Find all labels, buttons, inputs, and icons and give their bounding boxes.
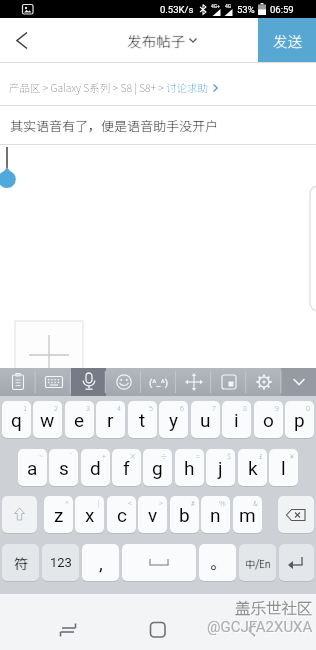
staticText: @GCJFA2XUXA: [207, 618, 313, 636]
staticText: $: [227, 450, 231, 461]
staticText: v: [148, 504, 158, 526]
button[interactable]: [71, 368, 106, 396]
staticText: 产品区 > Galaxy S系列 > S8 | S8+ > 讨论求助: [9, 80, 209, 95]
staticText: %: [219, 497, 226, 508]
button[interactable]: 发布帖子: [127, 30, 197, 51]
staticText: l: [281, 457, 286, 479]
staticText: <: [128, 497, 132, 508]
button[interactable]: (^_^): [141, 368, 176, 396]
button[interactable]: k: [238, 449, 267, 486]
staticText: q: [11, 409, 22, 431]
staticText: ^: [65, 497, 69, 508]
button[interactable]: q: [2, 401, 31, 438]
button[interactable]: 产品区 > Galaxy S系列 > S8 | S8+ > 讨论求助: [9, 70, 316, 105]
button[interactable]: y: [159, 401, 188, 438]
button[interactable]: 其实语音有了，便是语音助手没开户: [0, 106, 316, 144]
button[interactable]: [40, 594, 100, 650]
button[interactable]: a: [18, 449, 47, 486]
button[interactable]: [0, 145, 316, 368]
button[interactable]: h: [175, 449, 204, 486]
button[interactable]: n: [201, 496, 230, 533]
staticText: >: [159, 497, 163, 508]
staticText: 0: [306, 402, 310, 413]
button[interactable]: 符: [2, 544, 39, 581]
button[interactable]: [279, 544, 314, 581]
button[interactable]: [281, 368, 316, 396]
staticText: y: [169, 409, 178, 431]
button[interactable]: d: [81, 449, 110, 486]
staticText: d: [90, 457, 101, 479]
button[interactable]: b: [170, 496, 199, 533]
staticText: 5: [149, 402, 153, 413]
staticText: (^_^): [149, 377, 169, 388]
button[interactable]: v: [138, 496, 167, 533]
staticText: r: [107, 409, 114, 431]
button[interactable]: r: [96, 401, 125, 438]
staticText: a: [27, 457, 38, 479]
staticText: 4G: [225, 3, 232, 9]
button[interactable]: 发送: [258, 18, 316, 62]
staticText: 123: [50, 555, 72, 570]
staticText: b: [179, 504, 190, 526]
button[interactable]: e: [65, 401, 94, 438]
staticText: 其实语音有了，便是语音助手没开户: [10, 116, 219, 135]
staticText: #: [191, 497, 195, 508]
button[interactable]: w: [33, 401, 62, 438]
button[interactable]: [222, 594, 282, 650]
button[interactable]: 中/En: [239, 544, 276, 581]
button[interactable]: [106, 368, 141, 396]
staticText: g: [152, 457, 163, 479]
button[interactable]: ,: [82, 544, 119, 581]
staticText: ÷: [160, 450, 168, 461]
button[interactable]: [2, 496, 37, 533]
button[interactable]: [36, 368, 71, 396]
button[interactable]: [122, 544, 196, 581]
staticText: ,: [99, 552, 103, 574]
button[interactable]: [128, 594, 188, 650]
button[interactable]: x: [75, 496, 104, 533]
button[interactable]: u: [191, 401, 220, 438]
button[interactable]: f: [112, 449, 141, 486]
staticText: 1: [23, 402, 27, 413]
staticText: n: [210, 504, 221, 526]
button[interactable]: i: [222, 401, 251, 438]
button[interactable]: t: [128, 401, 157, 438]
staticText: 发送: [273, 30, 302, 51]
staticText: m: [239, 504, 256, 526]
button[interactable]: o: [254, 401, 283, 438]
button[interactable]: l: [269, 449, 298, 486]
button[interactable]: 。: [199, 544, 236, 581]
button[interactable]: [246, 368, 281, 396]
button[interactable]: c: [107, 496, 136, 533]
staticText: p: [294, 409, 305, 431]
staticText: 4G+: [211, 3, 221, 9]
button[interactable]: [176, 368, 211, 396]
button[interactable]: p: [285, 401, 314, 438]
button[interactable]: m: [233, 496, 262, 533]
button[interactable]: g: [143, 449, 172, 486]
staticText: 0.53K/s: [160, 4, 194, 15]
staticText: 8: [243, 402, 247, 413]
staticText: 9: [275, 402, 279, 413]
button[interactable]: [278, 496, 314, 533]
staticText: 。: [210, 552, 226, 574]
button[interactable]: [211, 368, 246, 396]
staticText: 53%: [237, 4, 255, 15]
staticText: 中/En: [245, 556, 271, 570]
staticText: 盖乐世社区: [235, 596, 313, 618]
staticText: o: [263, 409, 274, 431]
staticText: £: [259, 450, 263, 461]
staticText: t: [139, 409, 146, 431]
staticText: j: [218, 457, 223, 479]
button[interactable]: [0, 368, 36, 396]
button[interactable]: 123: [42, 544, 79, 581]
button[interactable]: s: [49, 449, 78, 486]
staticText: &: [253, 497, 258, 508]
staticText: `: [69, 450, 74, 461]
button[interactable]: z: [44, 496, 73, 533]
staticText: ~: [39, 450, 43, 461]
staticText: s: [59, 457, 69, 479]
button[interactable]: j: [206, 449, 235, 486]
button[interactable]: [0, 18, 44, 62]
staticText: z: [54, 504, 64, 526]
